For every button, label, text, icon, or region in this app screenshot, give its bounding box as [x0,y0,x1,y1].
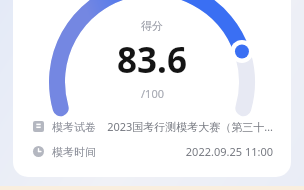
staticText: /100 [141,86,164,101]
button[interactable]: 得分 [13,0,291,177]
staticText: 模考试卷 [52,120,96,134]
other: Paper [33,121,44,132]
other: Time [33,146,44,157]
staticText: 2022.09.25 11:00 [185,144,273,159]
staticText: 模考时间 [52,145,96,159]
button[interactable]: Time [33,144,273,159]
staticText: 得分 [141,19,163,33]
button[interactable]: Paper [33,119,273,134]
staticText: 83.6 [117,36,187,84]
staticText: 2023国考行测模考大赛（第三十… [107,119,273,134]
